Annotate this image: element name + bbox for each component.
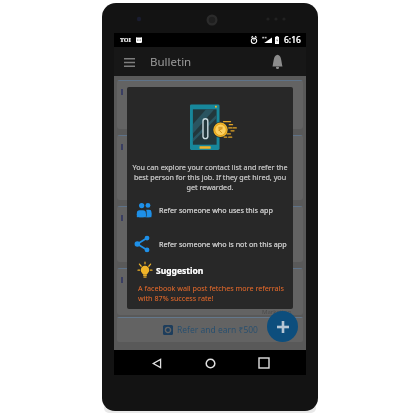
button[interactable]: Back [146,352,168,374]
button[interactable]: Add referral [267,311,298,342]
staticText: A facebook wall post fetches more referr… [138,283,285,303]
button[interactable]: Refer someone who is not on this app [127,234,293,254]
button[interactable] [117,206,303,262]
button[interactable]: Open navigation menu [120,53,138,71]
staticText: Refer someone who uses this app [159,205,273,215]
button[interactable]: Notifications [268,53,286,71]
button[interactable]: Recent apps [253,352,275,374]
staticText: 6:16 [284,34,301,46]
staticText: Refer and earn ₹500 [177,324,258,336]
staticText: TOI [120,36,131,44]
button[interactable]: Refer and earn ₹500 [117,317,303,342]
button[interactable]: Home [199,352,221,374]
button[interactable] [117,80,303,129]
staticText: Refer someone who is not on this app [159,239,287,249]
staticText: Marketing [262,308,291,316]
button[interactable] [117,135,303,200]
staticText: Suggestion [156,265,204,277]
staticText: You can explore your contact list and re… [132,162,288,192]
button[interactable] [117,268,303,315]
button[interactable]: Refer someone who uses this app [127,200,293,220]
staticText: Bulletin [150,54,192,70]
